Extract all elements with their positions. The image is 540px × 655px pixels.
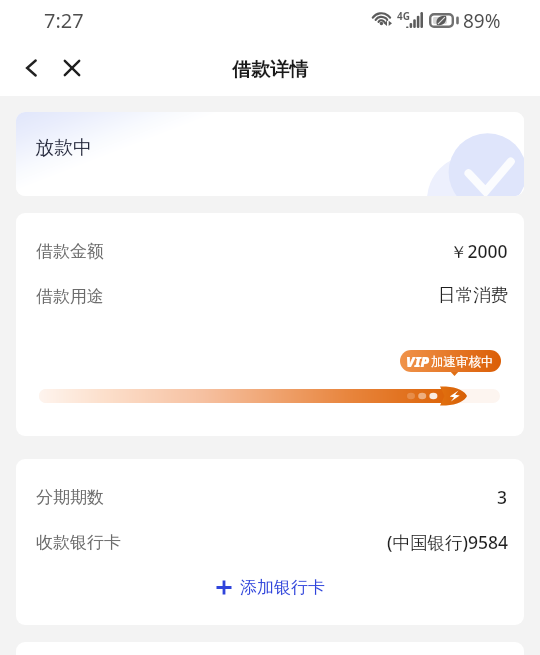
staticText: 放款中 — [35, 136, 92, 160]
button[interactable]: Back — [11, 48, 51, 88]
button[interactable]: Close — [52, 48, 92, 88]
staticText: 加速审核中 — [431, 354, 494, 370]
staticText: 日常消费 — [438, 284, 508, 306]
staticText: 借款详情 — [232, 58, 308, 82]
staticText: 89% — [463, 8, 501, 34]
staticText: VIP — [406, 352, 430, 371]
button[interactable]: 添加银行卡 — [202, 571, 339, 604]
staticText: 添加银行卡 — [240, 577, 325, 598]
staticText: 7:27 — [44, 7, 84, 34]
staticText: 3 — [497, 485, 508, 507]
staticText: 分期期数 — [36, 487, 104, 508]
staticText: 借款用途 — [36, 286, 104, 307]
staticText: 借款金额 — [36, 241, 104, 262]
staticText: 收款银行卡 — [36, 532, 121, 553]
staticText: (中国银行)9584 — [387, 530, 508, 552]
staticText: ￥2000 — [450, 239, 508, 261]
staticText: 4G — [397, 9, 410, 23]
